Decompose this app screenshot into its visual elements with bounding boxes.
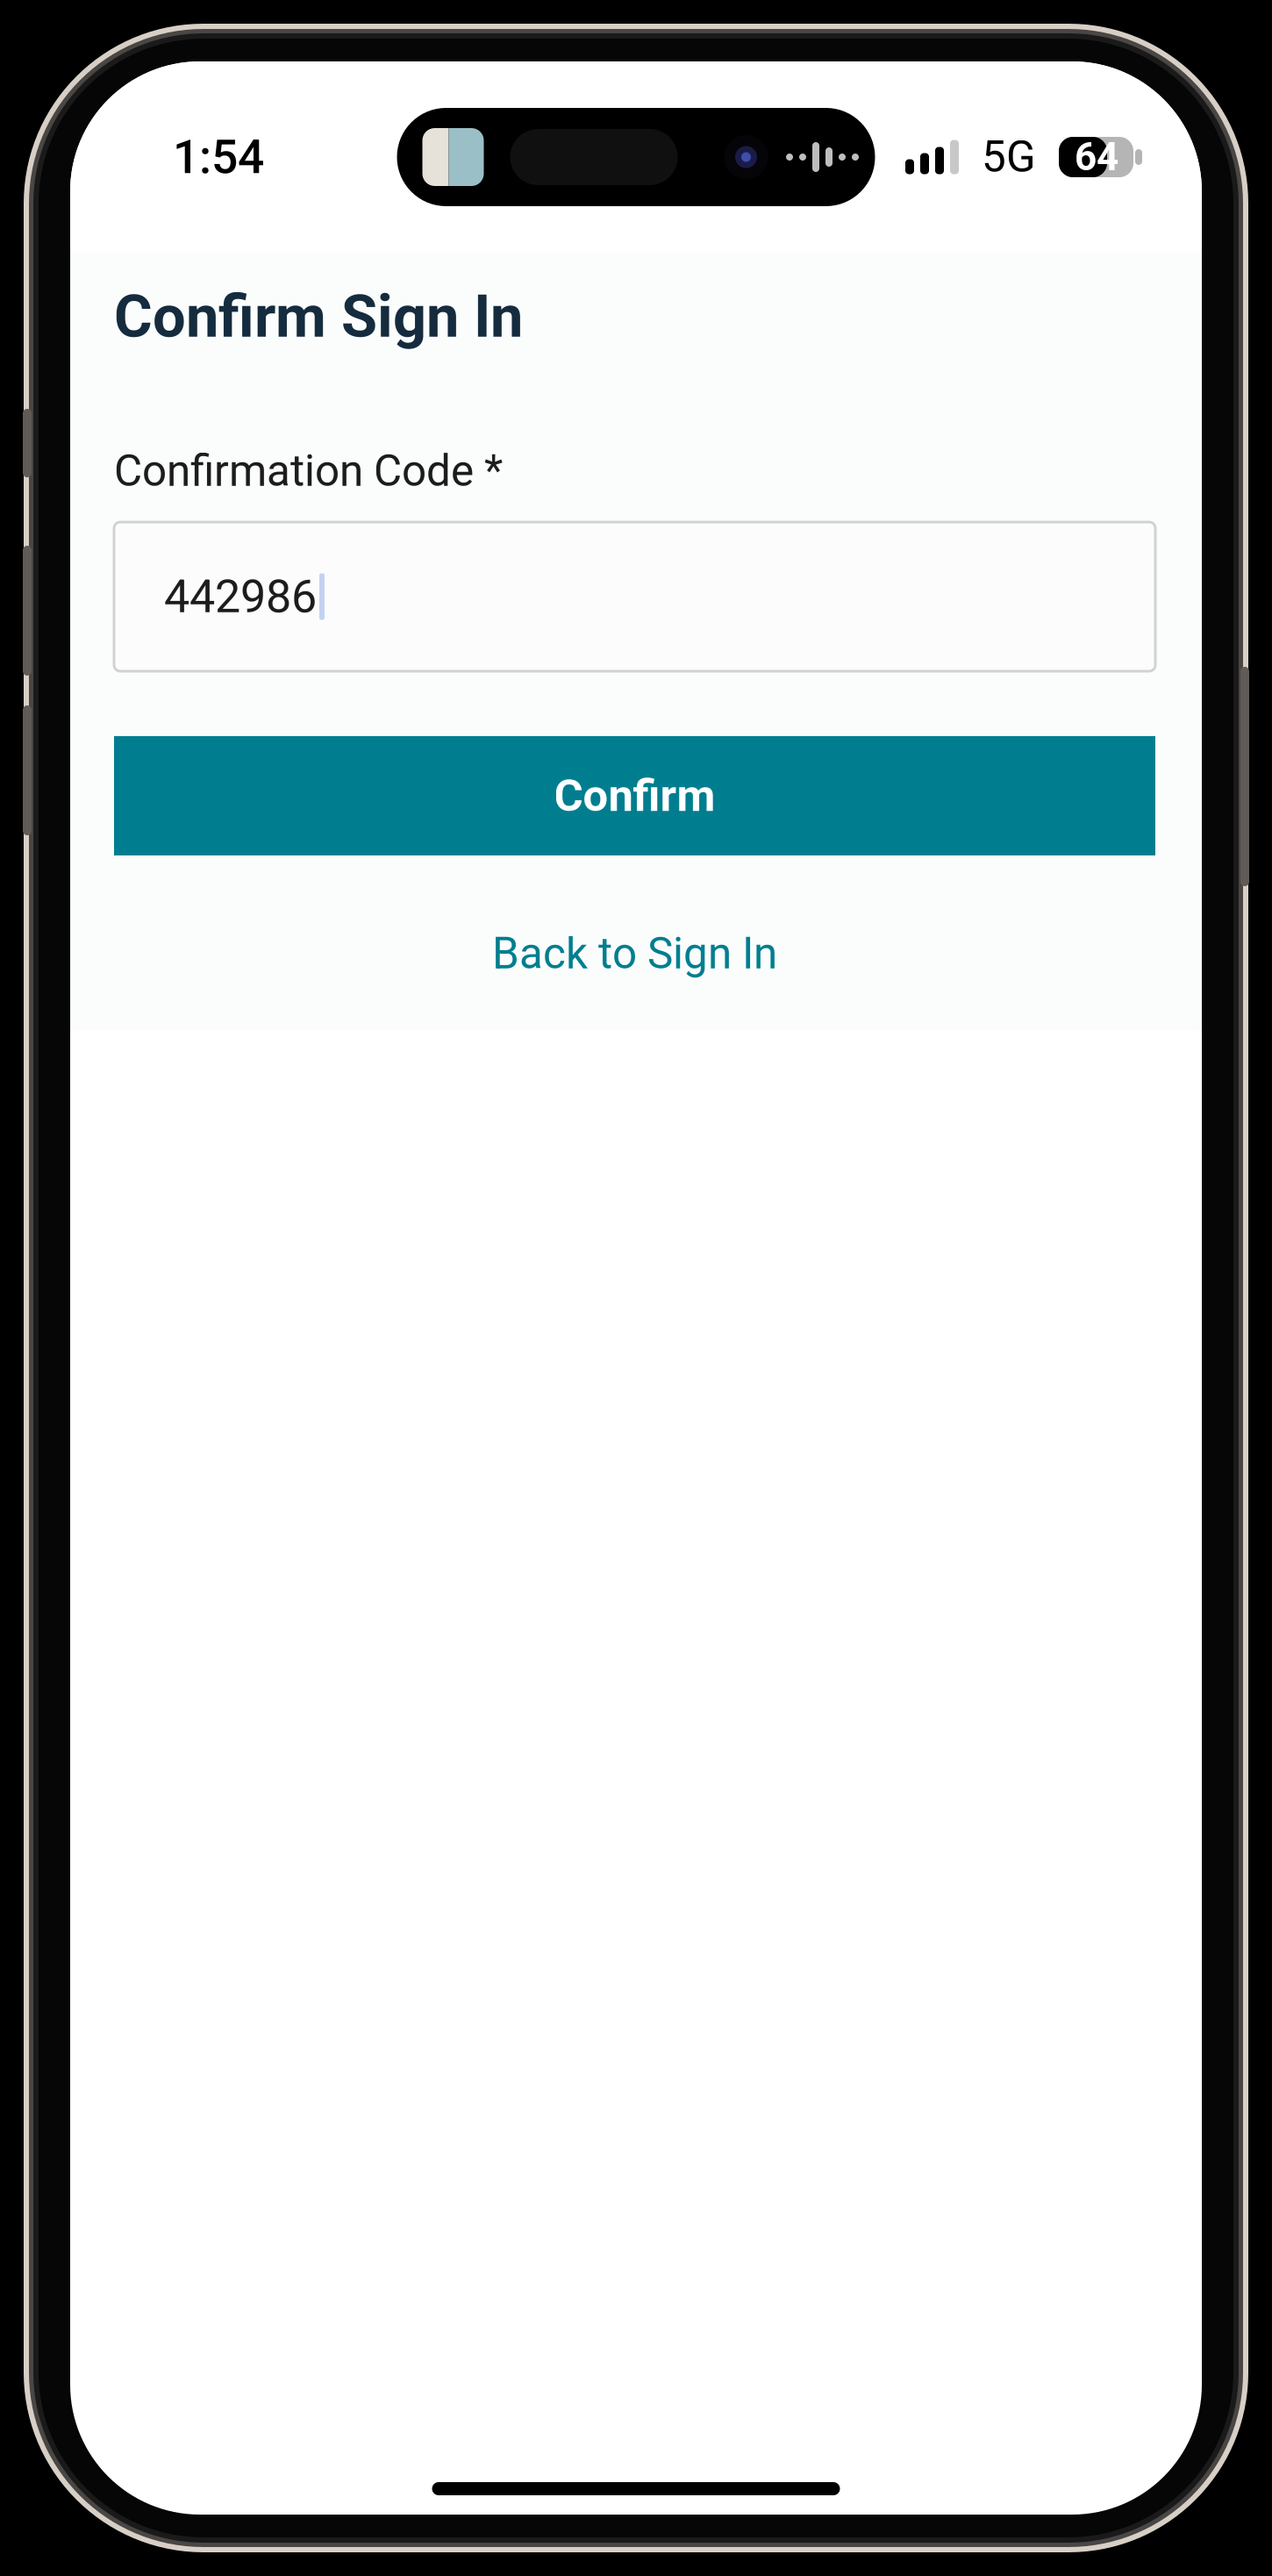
staticText: 442986 xyxy=(164,570,317,623)
button[interactable]: Back to Sign In xyxy=(114,905,1155,1003)
staticText: 1:54 xyxy=(173,130,264,185)
button[interactable]: Confirm xyxy=(114,736,1155,855)
staticText: Confirm Sign In xyxy=(114,282,523,351)
staticText: 5G xyxy=(982,132,1036,182)
staticText: Confirmation Code * xyxy=(114,446,503,497)
staticText: Back to Sign In xyxy=(492,928,777,979)
staticText: 64 xyxy=(1075,134,1118,180)
staticText: Confirm xyxy=(554,770,715,822)
